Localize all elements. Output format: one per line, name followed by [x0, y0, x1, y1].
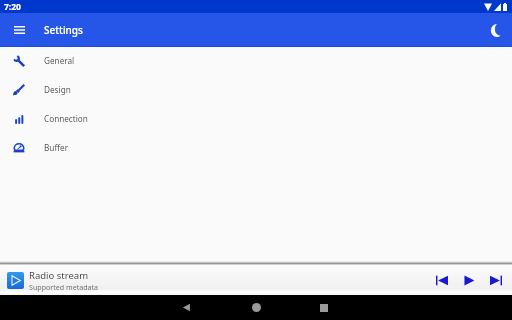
button[interactable]: Back [174, 295, 199, 320]
button[interactable]: Next [482, 268, 509, 292]
button[interactable]: Design [0, 75, 512, 104]
button[interactable]: General [0, 46, 512, 75]
staticText: Radio stream [29, 269, 89, 282]
staticText: Design [44, 84, 71, 95]
button[interactable]: Toggle dark mode [487, 19, 509, 41]
staticText: Settings [44, 23, 83, 37]
staticText: 7:20 [4, 1, 21, 13]
button[interactable]: Play [455, 268, 482, 292]
button[interactable]: Open navigation menu [8, 19, 30, 41]
staticText: Connection [44, 113, 88, 124]
button[interactable]: Buffer [0, 133, 512, 162]
button[interactable]: Stream artwork [7, 272, 24, 289]
button[interactable]: Recent apps [311, 295, 336, 320]
staticText: Buffer [44, 142, 69, 153]
button[interactable]: Connection [0, 104, 512, 133]
staticText: General [44, 55, 75, 66]
staticText: Supported metadata [29, 282, 99, 292]
button[interactable]: Previous [428, 268, 455, 292]
button[interactable]: Home [244, 295, 269, 320]
